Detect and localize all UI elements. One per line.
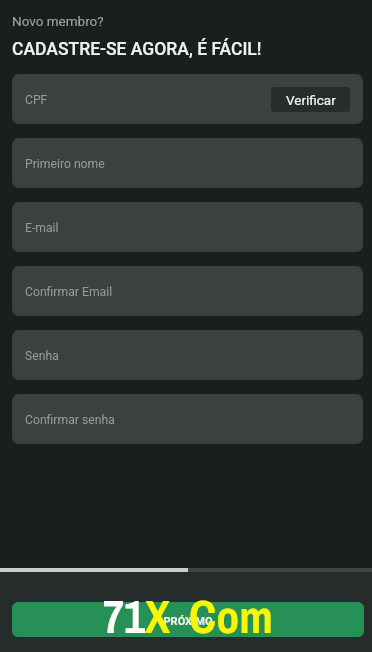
staticText: 71 — [103, 585, 145, 647]
staticText: CPF — [25, 93, 48, 107]
staticText: Com — [189, 585, 273, 647]
staticText: Novo membro? — [12, 13, 104, 29]
staticText: Confirmar Email — [25, 285, 113, 299]
staticText: CADASTRE-SE AGORA, É FÁCIL! — [12, 39, 262, 60]
button[interactable]: Confirmar senha — [12, 394, 363, 444]
staticText: PRÓXIMO — [163, 615, 213, 628]
button[interactable]: PRÓXIMO — [12, 602, 364, 637]
button[interactable]: CPF — [12, 74, 363, 124]
button[interactable]: Primeiro nome — [12, 138, 363, 188]
staticText: E-mail — [25, 221, 59, 235]
staticText: Confirmar senha — [25, 413, 115, 427]
button[interactable]: Verificar — [271, 87, 350, 112]
button[interactable]: Senha — [12, 330, 363, 380]
staticText: Verificar — [286, 92, 336, 108]
button[interactable]: Confirmar Email — [12, 266, 363, 316]
button[interactable]: E-mail — [12, 202, 363, 252]
staticText: Senha — [25, 349, 59, 363]
staticText: Primeiro nome — [25, 157, 105, 171]
staticText: X — [145, 585, 171, 647]
